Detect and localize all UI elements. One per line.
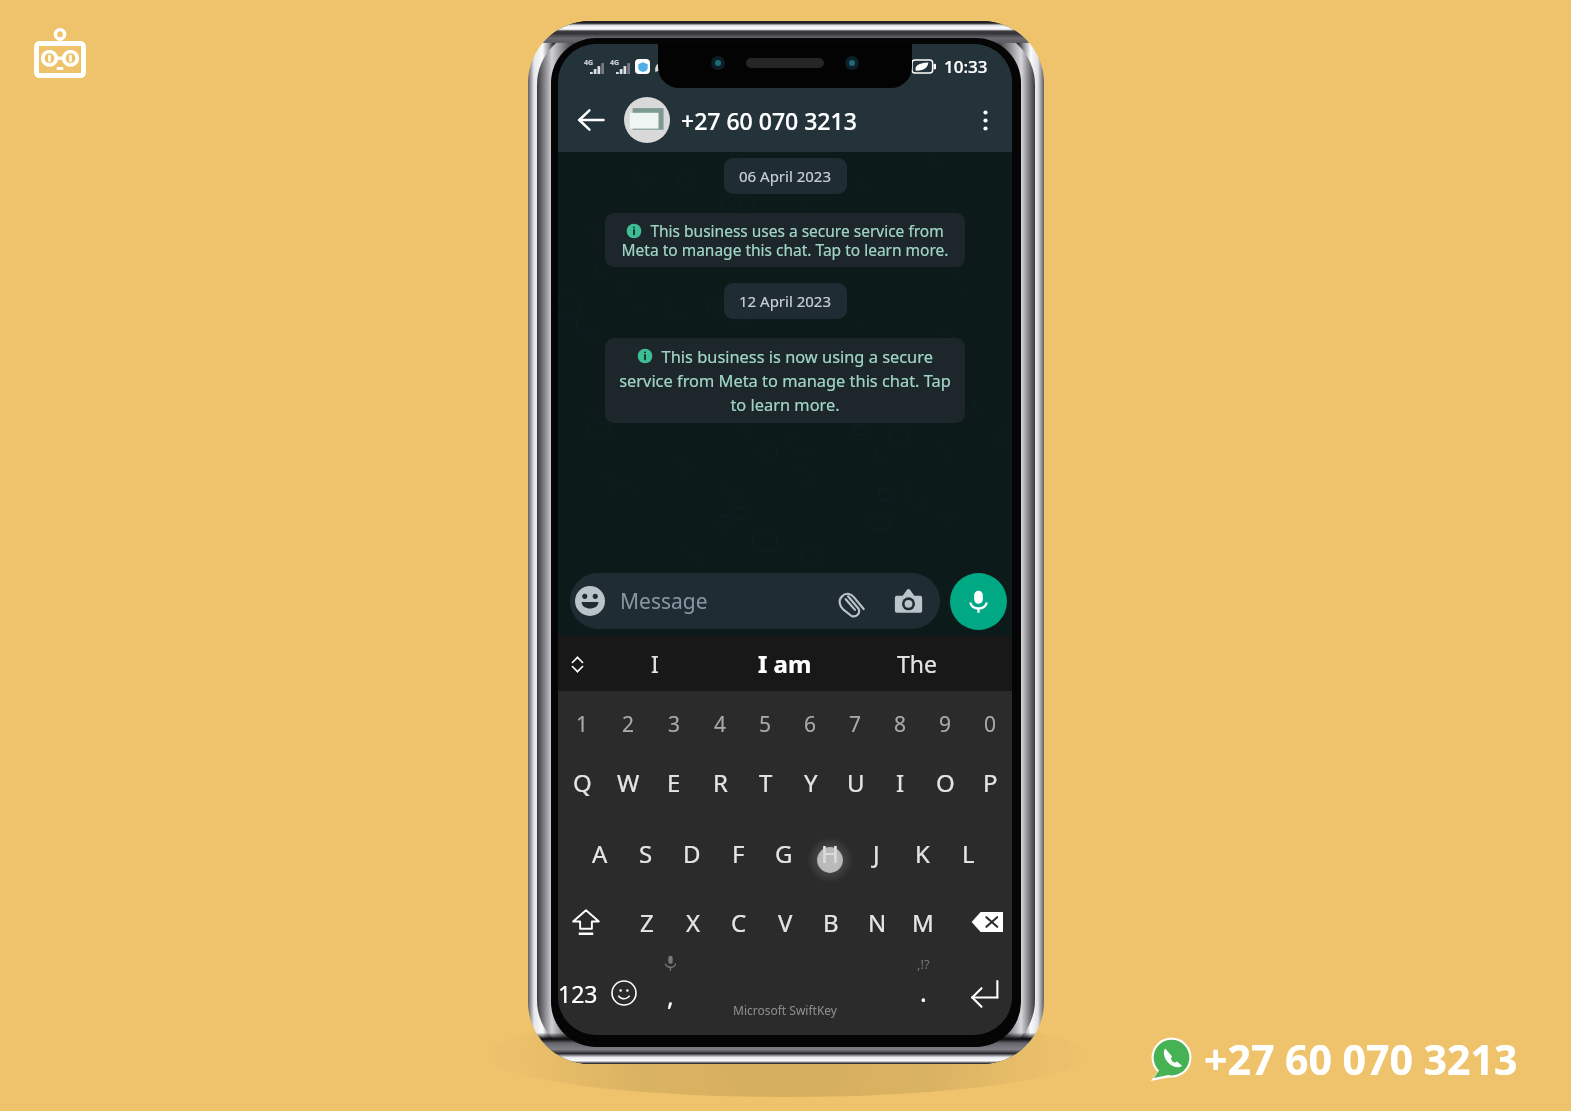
staticText: The [897,648,937,679]
button[interactable]: Expand suggestions [559,640,595,688]
button[interactable]: 123 [558,963,601,1023]
staticText: � This business is now using a secure se… [617,345,953,416]
staticText: D [683,837,701,870]
button[interactable]: J [853,813,899,893]
staticText: Z [640,906,654,939]
staticText: Y [804,766,818,799]
button[interactable]: 6 [788,697,833,751]
staticText: I [651,648,659,679]
staticText: 10:33 [944,55,988,78]
button[interactable]: Voice message [950,573,1007,630]
staticText: P [983,766,998,799]
staticText: W [617,766,640,799]
staticText: Microsoft SwiftKey [733,1002,837,1018]
button[interactable]: Enter [957,961,1009,1025]
button[interactable]: L [945,813,991,893]
button[interactable]: X [670,893,716,951]
button[interactable]: S [623,813,669,893]
staticText: , [667,979,674,1013]
staticText: 5 [759,710,772,739]
staticText: I am [758,647,812,680]
staticText: 0 [984,710,997,739]
staticText: 6 [804,710,817,739]
button[interactable]: Emoji [601,963,647,1023]
button[interactable]: 5 [743,697,788,751]
button[interactable]: D [669,813,715,893]
button[interactable]: F [715,813,761,893]
staticText: I [896,766,905,799]
staticText: 2 [622,710,635,739]
button[interactable]: P [968,751,1012,813]
staticText: +27 60 070 3213 [681,105,857,136]
button[interactable]: � This business is now using a secure se… [605,338,965,423]
button[interactable]: Q [559,751,605,813]
button[interactable]: 7 [833,697,878,751]
button[interactable]: ,!? [900,955,946,1031]
staticText: 06 April 2023 [739,166,832,186]
button[interactable]: H [807,813,853,893]
button[interactable]: Y [788,751,833,813]
button[interactable]: M [900,893,946,951]
staticText: 8 [894,710,907,739]
button[interactable]: More options [964,99,1006,141]
button[interactable]: 3 [651,697,697,751]
staticText: O [936,766,955,799]
button[interactable]: B [808,893,854,951]
staticText: N [868,906,887,939]
button[interactable]: V [762,893,808,951]
button[interactable]: N [854,893,900,951]
button[interactable]: � This business uses a secure service fr… [605,213,965,267]
staticText: H [821,837,839,870]
button[interactable]: 4 [697,697,743,751]
button[interactable]: K [899,813,945,893]
button[interactable]: Z [624,893,670,951]
staticText: � This business uses a secure service fr… [617,220,953,260]
button[interactable]: , [647,955,693,1031]
button[interactable]: O [923,751,968,813]
button[interactable]: I [600,636,710,691]
button[interactable]: T [743,751,788,813]
staticText: X [686,906,701,939]
button[interactable]: I am [719,636,851,691]
button[interactable]: A [577,813,623,893]
button[interactable]: Backspace [936,893,1012,951]
staticText: L [962,837,975,870]
staticText: 9 [939,710,952,739]
staticText: 4G [584,58,594,68]
staticText: U [847,766,865,799]
button[interactable]: C [716,893,762,951]
staticText: J [873,837,880,870]
button[interactable]: Profile photo [624,97,670,143]
staticText: C [731,906,747,939]
button[interactable]: G [761,813,807,893]
staticText: T [759,766,773,799]
staticText: B [823,906,839,939]
staticText: 3 [668,710,681,739]
button[interactable]: W [605,751,651,813]
button[interactable]: R [697,751,743,813]
button[interactable]: I [878,751,923,813]
other: Bot logo [33,29,87,79]
staticText: V [778,906,793,939]
staticText: A [592,837,608,870]
staticText: G [775,837,793,870]
button[interactable]: E [651,751,697,813]
staticText: Q [573,766,592,799]
staticText: 123 [558,978,598,1009]
button[interactable]: 0 [968,697,1012,751]
staticText: S [639,837,653,870]
button[interactable]: 2 [605,697,651,751]
staticText: K [915,837,930,870]
button[interactable]: Message [570,573,940,629]
button[interactable]: 9 [923,697,968,751]
button[interactable]: 8 [878,697,923,751]
button[interactable]: U [833,751,878,813]
button[interactable]: 1 [559,697,605,751]
button[interactable]: The [862,636,972,691]
button[interactable]: Shift [558,893,614,951]
staticText: F [732,837,745,870]
button[interactable]: Back [569,98,613,142]
staticText: M [912,906,934,939]
staticText: . [920,975,927,1009]
